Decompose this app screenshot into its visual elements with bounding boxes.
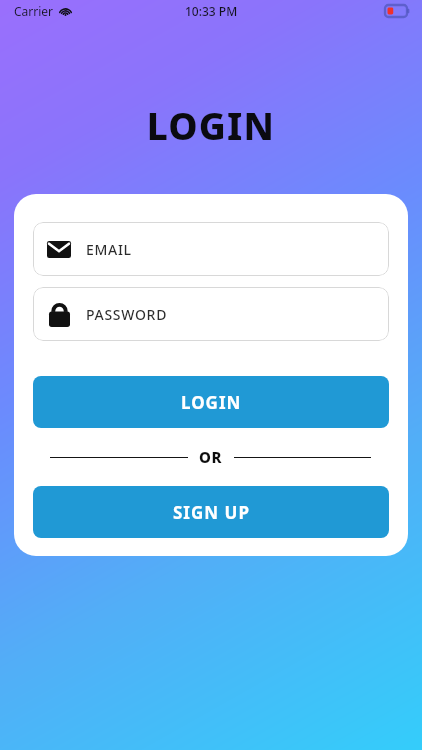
staticText: LOGIN <box>181 391 242 414</box>
staticText: LOGIN <box>0 100 422 150</box>
staticText: 10:33 PM <box>185 3 238 19</box>
button[interactable]: LOGIN <box>33 376 389 428</box>
staticText: OR <box>199 447 222 467</box>
staticText: SIGN UP <box>173 501 250 524</box>
staticText: PASSWORD <box>86 305 168 324</box>
button[interactable]: PASSWORD <box>33 287 389 341</box>
staticText: Carrier <box>14 3 54 19</box>
button[interactable]: SIGN UP <box>33 486 389 538</box>
staticText: EMAIL <box>86 240 132 259</box>
button[interactable]: EMAIL <box>33 222 389 276</box>
